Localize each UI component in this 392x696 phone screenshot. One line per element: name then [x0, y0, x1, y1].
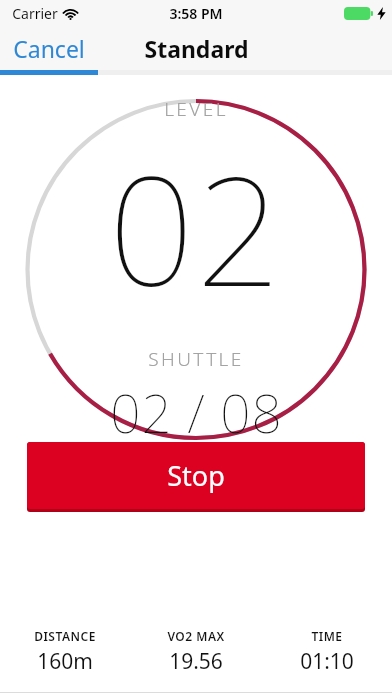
- staticText: 01:10: [300, 647, 354, 676]
- staticText: DISTANCE: [34, 628, 96, 644]
- staticText: 160m: [37, 647, 93, 676]
- staticText: Stop: [167, 457, 225, 494]
- staticText: 02: [108, 126, 284, 330]
- staticText: VO2 MAX: [167, 628, 225, 644]
- staticText: LEVEL: [164, 96, 228, 122]
- staticText: TIME: [311, 628, 343, 644]
- other: Charging: [377, 7, 386, 20]
- staticText: Standard: [144, 33, 249, 64]
- staticText: Cancel: [13, 33, 85, 64]
- staticText: 3:58 PM: [169, 4, 223, 23]
- staticText: SHUTTLE: [148, 346, 244, 372]
- other: Wi-Fi: [63, 8, 78, 20]
- other: Battery: [344, 7, 374, 20]
- staticText: Carrier: [12, 4, 58, 23]
- button[interactable]: Stop: [27, 442, 365, 512]
- staticText: 02 / 08: [110, 376, 283, 441]
- staticText: 19.56: [169, 647, 223, 676]
- button[interactable]: Cancel: [0, 26, 98, 70]
